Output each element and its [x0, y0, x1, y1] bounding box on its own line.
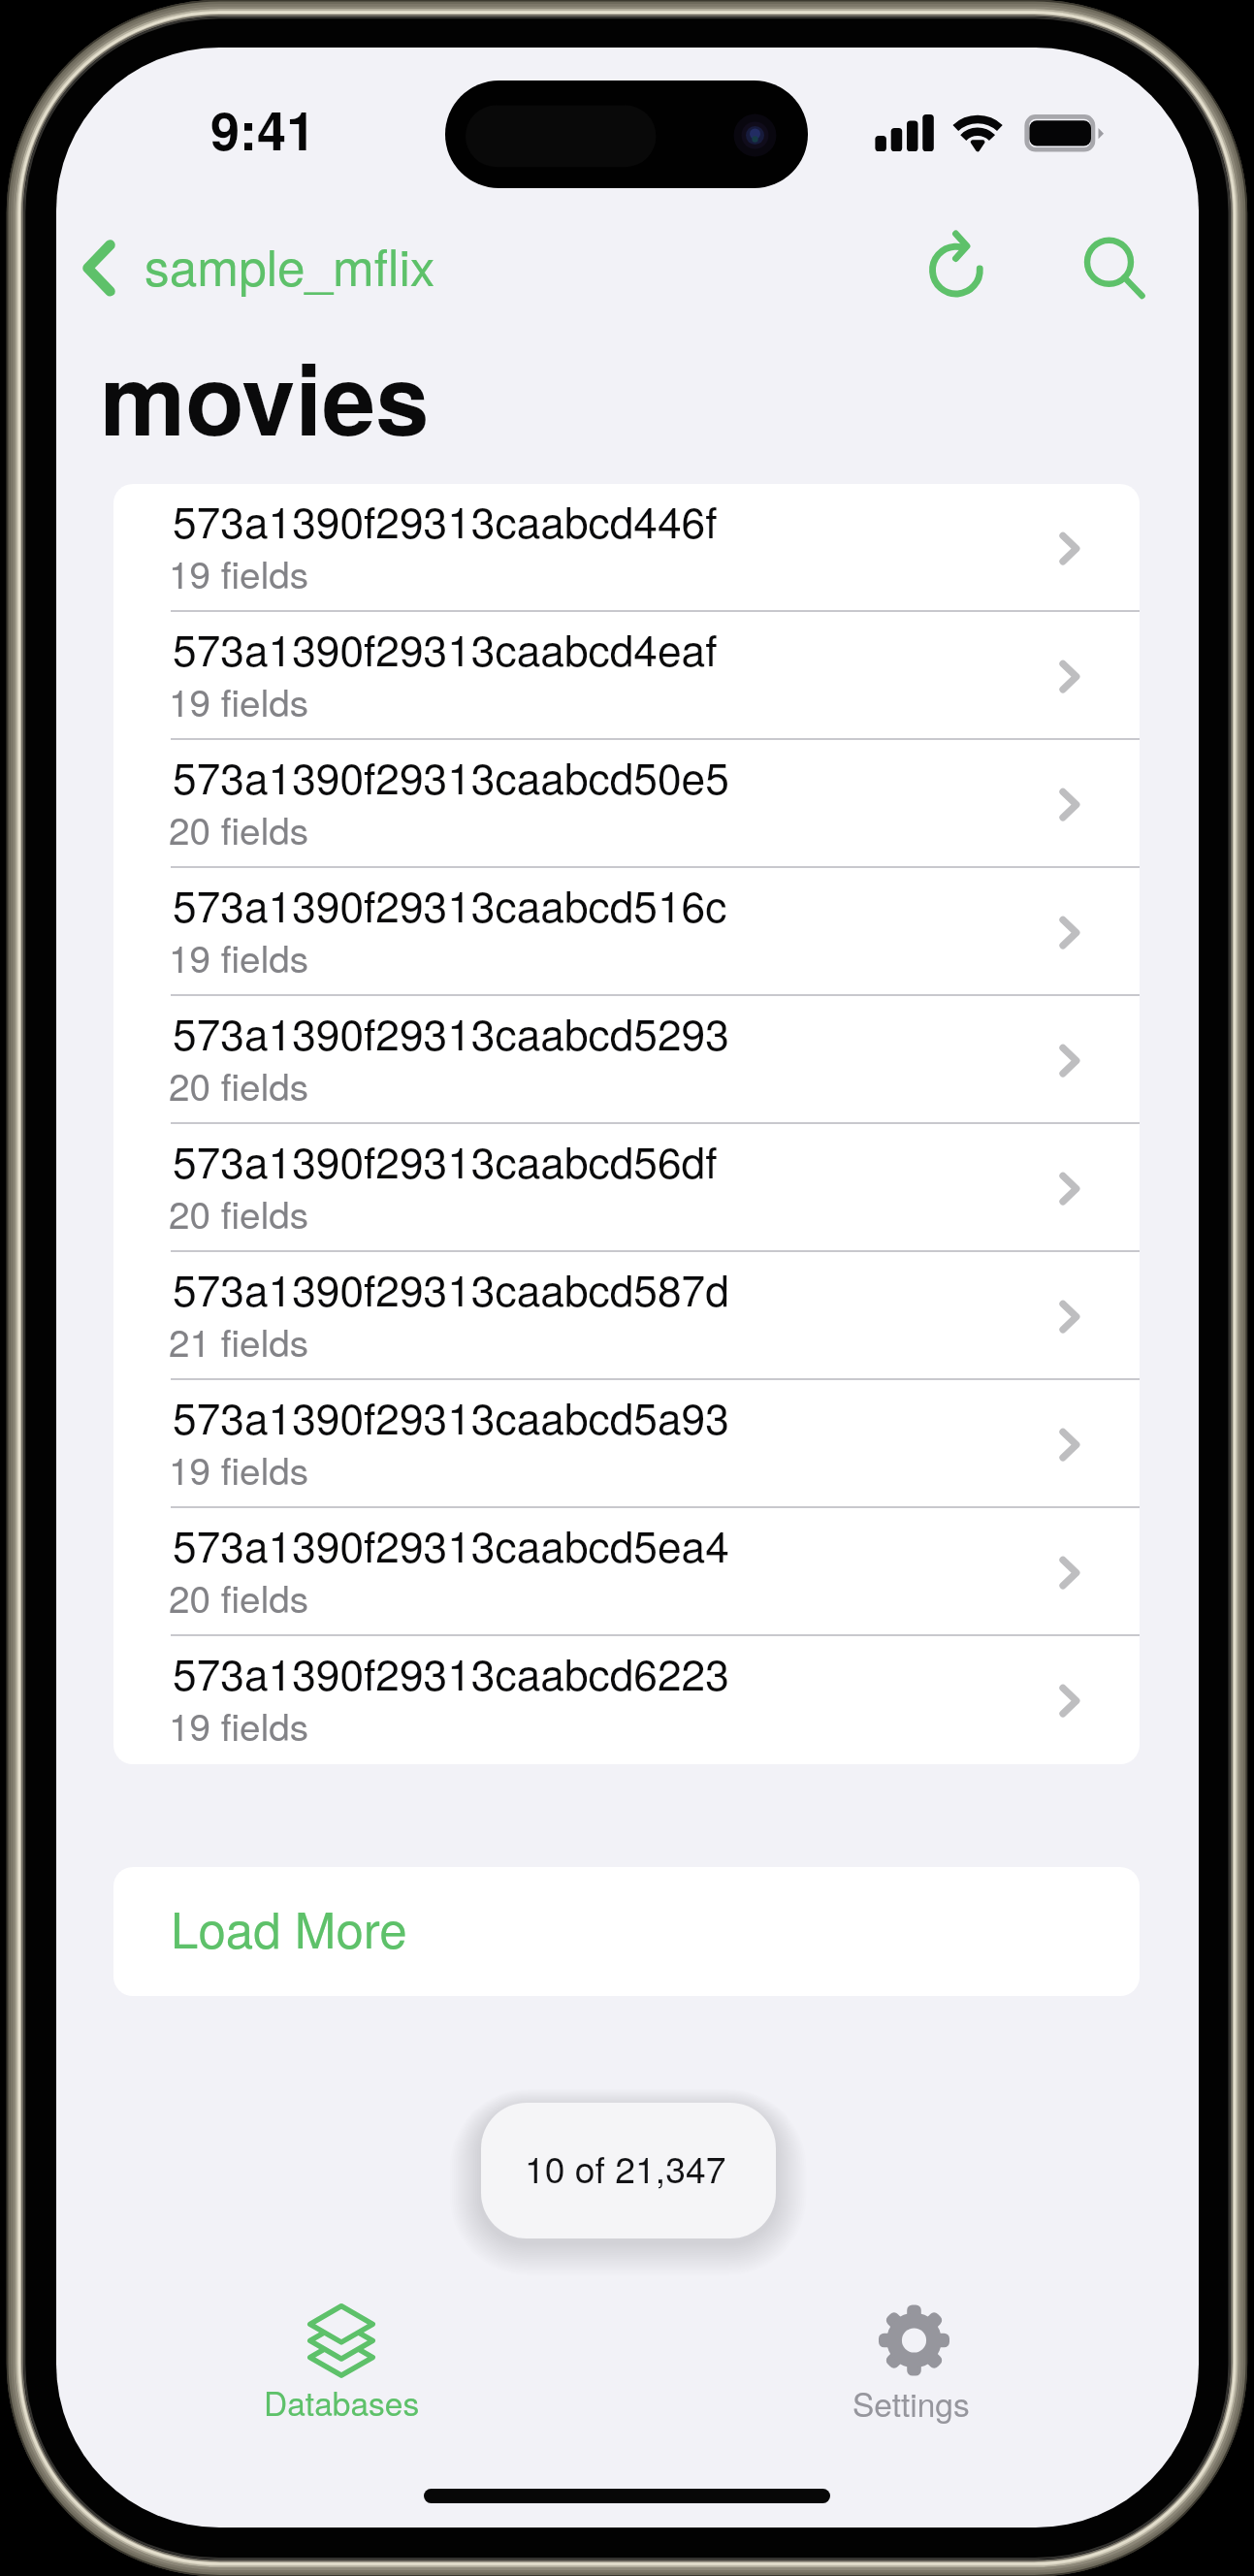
staticText: 573a1390f29313caabcd56df [173, 1129, 718, 1190]
button[interactable]: 573a1390f29313caabcd6223 [113, 1636, 1140, 1764]
staticText: 20 fields [169, 1186, 309, 1240]
staticText: 573a1390f29313caabcd4eaf [173, 617, 718, 678]
staticText: 573a1390f29313caabcd5293 [173, 1001, 729, 1062]
staticText: 10 of 21,347 [525, 2141, 726, 2193]
button[interactable]: Refresh [910, 223, 1003, 316]
staticText: 21 fields [169, 1314, 309, 1368]
button[interactable]: 573a1390f29313caabcd5ea4 [113, 1508, 1140, 1636]
button[interactable]: 573a1390f29313caabcd5293 [113, 996, 1140, 1124]
staticText: 9:41 [210, 91, 316, 166]
staticText: 19 fields [169, 930, 309, 983]
staticText: sample_mflix [145, 229, 435, 300]
staticText: 20 fields [169, 1570, 309, 1624]
staticText: 19 fields [169, 1698, 309, 1752]
staticText: 573a1390f29313caabcd50e5 [173, 745, 729, 806]
button[interactable]: 573a1390f29313caabcd4eaf [113, 612, 1140, 740]
button[interactable]: 573a1390f29313caabcd56df [113, 1124, 1140, 1252]
button[interactable]: 573a1390f29313caabcd587d [113, 1252, 1140, 1380]
button[interactable]: 573a1390f29313caabcd446f [113, 484, 1140, 612]
staticText: 573a1390f29313caabcd516c [173, 873, 727, 934]
staticText: 573a1390f29313caabcd5a93 [173, 1385, 729, 1446]
button[interactable]: 573a1390f29313caabcd516c [113, 868, 1140, 996]
staticText: 573a1390f29313caabcd446f [173, 489, 718, 550]
staticText: 20 fields [169, 1058, 309, 1111]
staticText: 573a1390f29313caabcd5ea4 [173, 1513, 729, 1574]
button[interactable]: Load More [113, 1867, 1140, 1996]
staticText: Databases [264, 2379, 420, 2426]
staticText: Load More [171, 1891, 407, 1962]
staticText: 19 fields [169, 546, 309, 599]
staticText: 19 fields [169, 674, 309, 727]
button[interactable]: 573a1390f29313caabcd5a93 [113, 1380, 1140, 1508]
staticText: Settings [852, 2380, 970, 2427]
button[interactable]: Search [1061, 219, 1154, 312]
staticText: 20 fields [169, 802, 309, 855]
staticText: 573a1390f29313caabcd6223 [173, 1641, 729, 1702]
button[interactable]: Databases [200, 2284, 481, 2439]
button[interactable]: 573a1390f29313caabcd50e5 [113, 740, 1140, 868]
button[interactable]: Settings [773, 2284, 1054, 2439]
staticText: 19 fields [169, 1442, 309, 1496]
button[interactable]: Back to sample_mflix [74, 227, 425, 316]
staticText: movies [100, 327, 430, 465]
staticText: 573a1390f29313caabcd587d [173, 1257, 729, 1318]
